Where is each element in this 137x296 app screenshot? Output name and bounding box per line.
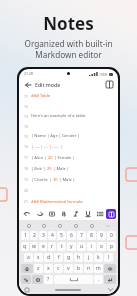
button[interactable]: Underline bbox=[82, 208, 94, 219]
button[interactable]: 7 bbox=[77, 231, 86, 240]
button[interactable]: More options bbox=[100, 221, 116, 230]
staticText: 6 bbox=[70, 232, 73, 239]
button[interactable]: n bbox=[84, 264, 93, 273]
button[interactable]: s bbox=[34, 253, 43, 262]
staticText: b bbox=[77, 265, 81, 272]
button[interactable]: List bbox=[94, 208, 106, 219]
staticText: 0 bbox=[110, 232, 113, 239]
staticText: n bbox=[87, 265, 91, 272]
button[interactable]: . bbox=[94, 275, 103, 284]
staticText: 11 bbox=[24, 94, 28, 99]
button[interactable]: Bold bbox=[58, 208, 70, 219]
staticText: 20 bbox=[48, 155, 53, 161]
button[interactable]: e bbox=[39, 242, 47, 251]
staticText: d bbox=[47, 254, 51, 261]
button[interactable]: p bbox=[107, 242, 116, 251]
button[interactable]: f bbox=[54, 253, 63, 262]
staticText: | Female | bbox=[53, 155, 75, 161]
staticText: m bbox=[96, 265, 101, 272]
button[interactable]: Settings bbox=[52, 221, 68, 230]
staticText: l bbox=[108, 254, 110, 261]
staticText: 21:28 bbox=[24, 71, 33, 76]
button[interactable]: Search bbox=[68, 221, 84, 230]
button[interactable]: 9 bbox=[97, 231, 106, 240]
button[interactable]: y bbox=[67, 242, 76, 251]
button[interactable]: 4 bbox=[48, 231, 56, 240]
button[interactable]: 1 bbox=[21, 231, 29, 240]
button[interactable]: r bbox=[48, 242, 56, 251]
button[interactable]: i bbox=[87, 242, 96, 251]
button[interactable]: Backspace bbox=[104, 264, 116, 273]
staticText: 20 bbox=[24, 188, 28, 193]
staticText: 17 bbox=[24, 155, 28, 160]
button[interactable]: z bbox=[34, 264, 43, 273]
button[interactable]: Switch language bbox=[32, 275, 43, 284]
button[interactable]: Redo bbox=[33, 208, 46, 219]
button[interactable]: j bbox=[84, 253, 93, 262]
button[interactable]: Space bbox=[54, 275, 93, 284]
button[interactable]: Back bbox=[22, 79, 33, 90]
staticText: 3 bbox=[42, 232, 45, 239]
button[interactable]: u bbox=[77, 242, 86, 251]
button[interactable]: o bbox=[97, 242, 106, 251]
staticText: 15 bbox=[24, 134, 28, 139]
button[interactable]: m bbox=[94, 264, 103, 273]
button[interactable]: Clipboard bbox=[84, 221, 100, 230]
button[interactable]: Hide keyboard bbox=[107, 286, 114, 293]
button[interactable]: Preview bbox=[104, 79, 115, 90]
button[interactable]: h bbox=[74, 253, 83, 262]
staticText: c bbox=[57, 265, 60, 272]
button[interactable]: Voice input bbox=[36, 221, 52, 230]
button[interactable]: k bbox=[94, 253, 103, 262]
staticText: | Name | Age | Gender | bbox=[31, 133, 80, 139]
button[interactable]: b bbox=[74, 264, 83, 273]
staticText: ? bbox=[47, 276, 50, 283]
button[interactable]: Symbols bbox=[21, 275, 31, 284]
button[interactable]: d bbox=[44, 253, 53, 262]
staticText: 9 bbox=[100, 232, 103, 239]
staticText: Organized with built-in Markdown editor bbox=[0, 38, 137, 60]
button[interactable]: g bbox=[64, 253, 73, 262]
button[interactable]: Italic bbox=[70, 208, 82, 219]
staticText: | ---- | --- | ----- | bbox=[31, 144, 63, 150]
staticText: g bbox=[67, 254, 71, 261]
staticText: 8 bbox=[90, 232, 93, 239]
staticText: | Alice | bbox=[31, 155, 48, 161]
button[interactable]: Toggle keyboard bbox=[106, 209, 116, 219]
button[interactable]: l bbox=[104, 253, 113, 262]
button[interactable]: Emoji bbox=[21, 221, 36, 230]
staticText: Notes bbox=[0, 12, 137, 35]
staticText: 16 bbox=[24, 144, 28, 149]
button[interactable]: x bbox=[44, 264, 53, 273]
button[interactable]: 0 bbox=[107, 231, 116, 240]
button[interactable]: Shift bbox=[21, 264, 33, 273]
staticText: Edit mode bbox=[35, 81, 61, 88]
button[interactable]: 8 bbox=[87, 231, 96, 240]
staticText: a bbox=[27, 254, 30, 261]
staticText: ### Mathematical formula bbox=[31, 199, 83, 205]
staticText: 4 bbox=[51, 232, 54, 239]
staticText: ### Table bbox=[31, 93, 51, 99]
button[interactable]: q bbox=[21, 242, 29, 251]
staticText: 18 bbox=[24, 166, 28, 171]
button[interactable]: 6 bbox=[67, 231, 76, 240]
button[interactable]: a bbox=[24, 253, 33, 262]
button[interactable]: Undo bbox=[20, 208, 33, 219]
button[interactable]: c bbox=[54, 264, 63, 273]
button[interactable]: w bbox=[30, 242, 38, 251]
staticText: w bbox=[32, 243, 36, 250]
button[interactable]: Change keyboard bbox=[23, 286, 30, 293]
staticText: x bbox=[47, 265, 50, 272]
button[interactable]: ? bbox=[44, 275, 53, 284]
staticText: v bbox=[67, 265, 70, 272]
button[interactable]: 2 bbox=[30, 231, 38, 240]
button[interactable]: 5 bbox=[57, 231, 66, 240]
button[interactable]: 3 bbox=[39, 231, 47, 240]
staticText: s bbox=[37, 254, 40, 261]
staticText: q bbox=[23, 243, 27, 250]
staticText: e bbox=[42, 243, 45, 250]
button[interactable]: Enter bbox=[104, 275, 116, 284]
button[interactable]: Insert image bbox=[46, 208, 58, 219]
button[interactable]: t bbox=[57, 242, 66, 251]
button[interactable]: v bbox=[64, 264, 73, 273]
